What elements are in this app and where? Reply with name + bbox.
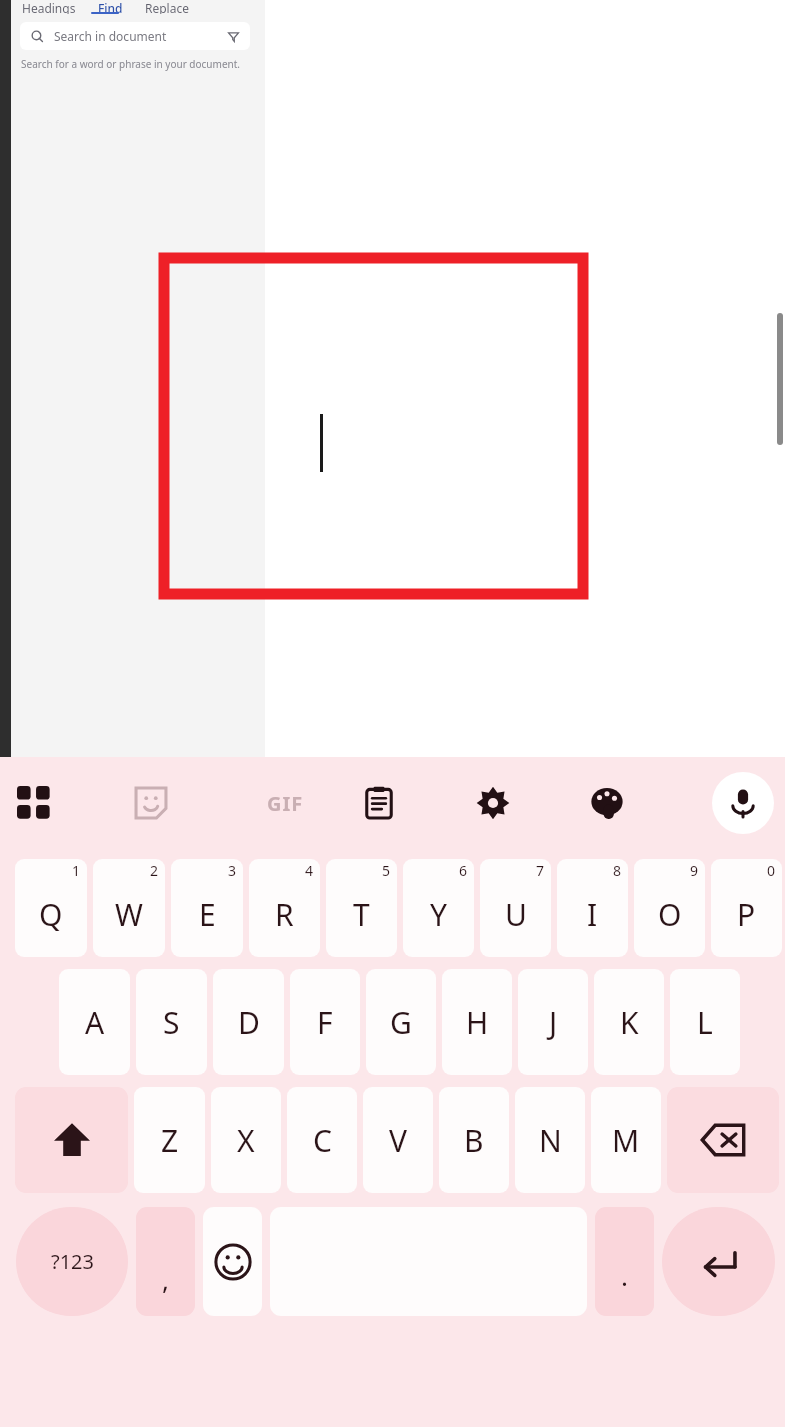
staticText: M — [612, 1120, 640, 1161]
staticText: Search for a word or phrase in your docu… — [21, 57, 241, 71]
button[interactable]: ?123 — [16, 1207, 128, 1316]
button[interactable]: A — [59, 969, 130, 1075]
button[interactable]: Open apps — [13, 782, 55, 824]
staticText: E — [199, 894, 216, 935]
staticText: D — [238, 1002, 260, 1043]
staticText: 6 — [459, 861, 468, 880]
staticText: Y — [430, 894, 447, 935]
button[interactable]: Enter — [662, 1207, 775, 1316]
button[interactable]: Search in document — [20, 22, 250, 50]
staticText: J — [549, 1002, 558, 1043]
button[interactable]: H — [442, 969, 512, 1075]
staticText: H — [466, 1002, 489, 1043]
staticText: S — [163, 1002, 180, 1043]
staticText: Headings — [22, 0, 76, 14]
button[interactable]: D — [213, 969, 284, 1075]
button[interactable]: Stickers — [130, 782, 172, 824]
staticText: 5 — [382, 861, 391, 880]
button[interactable]: 7 — [480, 859, 551, 957]
button[interactable]: K — [594, 969, 664, 1075]
button[interactable]: 0 — [711, 859, 782, 957]
button[interactable]: B — [439, 1087, 509, 1193]
staticText: Search in document — [54, 28, 167, 44]
staticText: GIF — [267, 790, 304, 817]
staticText: Find — [98, 0, 123, 14]
button[interactable]: S — [136, 969, 207, 1075]
staticText: U — [505, 894, 527, 935]
staticText: 7 — [536, 861, 545, 880]
staticText: N — [539, 1120, 562, 1161]
button[interactable]: Emoji — [203, 1207, 262, 1316]
button[interactable]: Themes — [586, 782, 628, 824]
staticText: Z — [161, 1120, 179, 1161]
staticText: , — [162, 1262, 169, 1297]
staticText: 1 — [72, 861, 81, 880]
button[interactable]: 4 — [249, 859, 320, 957]
button[interactable]: 9 — [634, 859, 705, 957]
staticText: O — [658, 894, 682, 935]
staticText: 2 — [150, 861, 159, 880]
staticText: P — [737, 894, 756, 935]
button[interactable]: L — [670, 969, 740, 1075]
staticText: Replace — [145, 0, 189, 14]
button[interactable]: Clipboard — [358, 782, 400, 824]
staticText: I — [587, 894, 598, 935]
staticText: V — [389, 1120, 407, 1161]
staticText: R — [275, 894, 294, 935]
button[interactable]: 8 — [557, 859, 628, 957]
button[interactable]: C — [287, 1087, 357, 1193]
staticText: C — [313, 1120, 332, 1161]
staticText: X — [237, 1120, 255, 1161]
staticText: 9 — [690, 861, 699, 880]
button[interactable]: Settings — [472, 782, 514, 824]
staticText: K — [620, 1002, 639, 1043]
staticText: L — [697, 1002, 713, 1043]
button[interactable]: Z — [134, 1087, 205, 1193]
button[interactable]: 3 — [171, 859, 243, 957]
button[interactable]: F — [290, 969, 360, 1075]
button[interactable]: 1 — [15, 859, 87, 957]
staticText: 8 — [613, 861, 622, 880]
staticText: A — [85, 1002, 105, 1043]
button[interactable]: J — [518, 969, 588, 1075]
button[interactable]: N — [515, 1087, 585, 1193]
button[interactable]: Comma — [136, 1207, 195, 1316]
button[interactable]: GIF — [252, 782, 318, 824]
button[interactable]: Voice input — [712, 772, 774, 834]
button[interactable]: 6 — [403, 859, 474, 957]
button[interactable]: 2 — [93, 859, 165, 957]
staticText: 4 — [305, 861, 314, 880]
button[interactable]: Shift — [15, 1087, 128, 1193]
button[interactable]: Period — [595, 1207, 654, 1316]
staticText: Q — [39, 894, 63, 935]
staticText: T — [353, 894, 370, 935]
staticText: 0 — [767, 861, 776, 880]
button[interactable]: G — [366, 969, 436, 1075]
button[interactable]: M — [591, 1087, 661, 1193]
staticText: . — [621, 1258, 628, 1293]
staticText: W — [115, 894, 143, 935]
staticText: ?123 — [51, 1248, 94, 1275]
button[interactable]: V — [363, 1087, 433, 1193]
staticText: 3 — [228, 861, 237, 880]
button[interactable]: X — [211, 1087, 281, 1193]
button[interactable]: 5 — [326, 859, 397, 957]
staticText: G — [390, 1002, 412, 1043]
staticText: F — [317, 1002, 333, 1043]
staticText: B — [464, 1120, 484, 1161]
button[interactable]: Backspace — [667, 1087, 779, 1193]
